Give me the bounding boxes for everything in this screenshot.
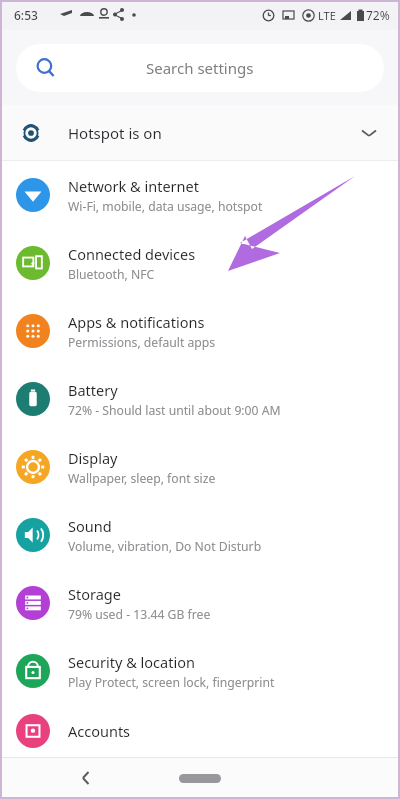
staticText: Permissions, default apps (68, 334, 216, 351)
button[interactable]: Display (0, 433, 400, 501)
button[interactable]: Sound (0, 501, 400, 569)
staticText: 72% - Should last until about 9:00 AM (68, 402, 281, 419)
staticText: 79% used - 13.44 GB free (68, 606, 211, 623)
staticText: LTE (318, 8, 336, 23)
button[interactable]: Home (172, 765, 228, 791)
staticText: Storage (68, 584, 121, 604)
button[interactable]: Connected devices (0, 229, 400, 297)
staticText: Display (68, 448, 118, 468)
staticText: Battery (68, 380, 118, 400)
button[interactable]: Accounts (0, 705, 400, 757)
staticText: Hotspot is on (68, 123, 162, 143)
button[interactable]: Search settings (16, 44, 384, 92)
button[interactable]: Network & internet (0, 161, 400, 229)
staticText: Connected devices (68, 244, 196, 264)
staticText: Volume, vibration, Do Not Disturb (68, 538, 262, 555)
button[interactable]: Storage (0, 569, 400, 637)
staticText: Network & internet (68, 176, 199, 196)
staticText: Apps & notifications (68, 312, 205, 332)
button[interactable]: Battery (0, 365, 400, 433)
button[interactable]: Back (70, 762, 102, 794)
staticText: Security & location (68, 652, 195, 672)
staticText: 6:53 (14, 7, 38, 23)
button[interactable]: Hotspot is on (0, 105, 400, 161)
staticText: 72% (366, 7, 390, 23)
button[interactable]: Apps & notifications (0, 297, 400, 365)
staticText: Sound (68, 516, 112, 536)
staticText: Search settings (146, 58, 254, 78)
staticText: Accounts (68, 721, 131, 741)
staticText: Play Protect, screen lock, fingerprint (68, 674, 275, 691)
staticText: Wallpaper, sleep, font size (68, 470, 216, 487)
staticText: Wi-Fi, mobile, data usage, hotspot (68, 198, 263, 215)
button[interactable]: Security & location (0, 637, 400, 705)
staticText: Bluetooth, NFC (68, 266, 155, 283)
